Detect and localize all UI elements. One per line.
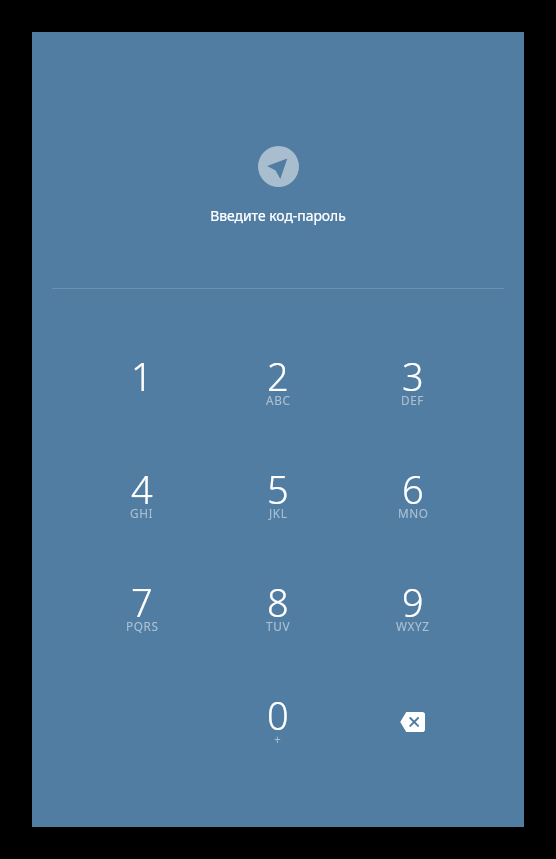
button[interactable]: 8 — [210, 553, 346, 666]
staticText: 6 — [402, 463, 424, 515]
button[interactable]: 3 — [345, 327, 481, 440]
staticText: 7 — [131, 576, 153, 628]
staticText: 0 — [267, 689, 289, 741]
button[interactable]: 2 — [210, 327, 346, 440]
staticText: 1 — [131, 350, 153, 402]
button[interactable]: 9 — [345, 553, 481, 666]
staticText: ABC — [266, 392, 291, 408]
button[interactable]: Backspace — [345, 666, 481, 779]
staticText: 3 — [402, 350, 424, 402]
staticText: + — [274, 731, 282, 747]
button[interactable]: 7 — [74, 553, 210, 666]
staticText: MNO — [398, 505, 429, 521]
button[interactable]: 1 — [74, 327, 210, 440]
button[interactable]: 0 — [210, 666, 346, 779]
staticText: GHI — [130, 505, 154, 521]
staticText: 4 — [131, 463, 153, 515]
staticText: WXYZ — [396, 618, 430, 634]
staticText: 5 — [267, 463, 289, 515]
button[interactable]: 4 — [74, 440, 210, 553]
staticText: PQRS — [126, 618, 159, 634]
button[interactable]: 5 — [210, 440, 346, 553]
staticText: 9 — [402, 576, 424, 628]
staticText: TUV — [266, 618, 291, 634]
staticText: 8 — [267, 576, 289, 628]
staticText: JKL — [269, 505, 288, 521]
staticText: Введите код-пароль — [210, 206, 346, 225]
staticText: 2 — [267, 350, 289, 402]
staticText: DEF — [401, 392, 425, 408]
button[interactable]: 6 — [345, 440, 481, 553]
